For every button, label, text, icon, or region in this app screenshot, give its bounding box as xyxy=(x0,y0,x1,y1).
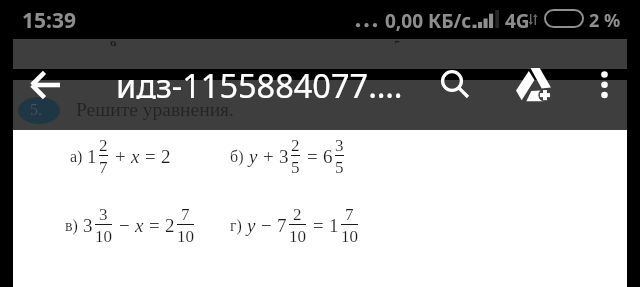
staticText: 2 xyxy=(161,146,171,167)
staticText: 1 xyxy=(87,146,97,167)
staticText: 10 xyxy=(341,227,358,246)
staticText: 3 xyxy=(279,146,289,167)
staticText: 10 xyxy=(177,227,194,246)
staticText: y xyxy=(249,146,258,167)
staticText: x xyxy=(131,146,140,167)
staticText: 9 xyxy=(110,39,117,46)
staticText: 2 xyxy=(165,215,175,236)
staticText: 3 xyxy=(335,136,344,155)
staticText: 7 xyxy=(277,215,287,236)
staticText: + xyxy=(263,146,274,167)
staticText: в) xyxy=(65,217,78,235)
staticText: 7 xyxy=(99,158,108,177)
staticText: − xyxy=(261,215,272,236)
staticText: Решите уравнения. xyxy=(76,99,234,121)
staticText: = xyxy=(149,215,160,236)
staticText: y xyxy=(247,215,256,236)
staticText: 5 xyxy=(394,39,401,44)
button[interactable]: идз-1155884077…. xyxy=(116,63,403,99)
staticText: 10 xyxy=(95,227,112,246)
staticText: 2 % xyxy=(589,8,621,33)
staticText: 7 xyxy=(181,205,190,224)
staticText: 5 xyxy=(335,158,344,177)
staticText: − xyxy=(119,215,130,236)
button[interactable]: More options xyxy=(589,61,620,107)
staticText: = xyxy=(145,146,156,167)
staticText: 3 xyxy=(99,205,108,224)
staticText: 1 xyxy=(329,215,339,236)
staticText: 15:39 xyxy=(22,6,76,35)
staticText: 7 xyxy=(345,205,354,224)
button[interactable]: Add to Drive xyxy=(511,64,554,107)
staticText: 6 xyxy=(323,146,333,167)
staticText: + xyxy=(115,146,126,167)
staticText: 5 xyxy=(291,158,300,177)
staticText: 5. xyxy=(30,101,42,119)
staticText: 2 xyxy=(291,136,300,155)
staticText: 10 xyxy=(289,227,306,246)
staticText: г) xyxy=(230,217,242,235)
staticText: 3 xyxy=(83,215,93,236)
staticText: = xyxy=(313,215,324,236)
staticText: 2 xyxy=(99,136,108,155)
staticText: 0,00 КБ/c xyxy=(385,8,472,34)
staticText: 2 xyxy=(293,205,302,224)
button[interactable]: Back xyxy=(21,62,67,108)
staticText: идз-1155884077…. xyxy=(116,63,403,99)
staticText: 4G xyxy=(505,8,530,34)
button[interactable]: Search xyxy=(430,59,474,103)
staticText: x xyxy=(135,215,144,236)
staticText: б) xyxy=(230,148,244,166)
staticText: = xyxy=(307,146,318,167)
staticText: а) xyxy=(70,148,83,166)
